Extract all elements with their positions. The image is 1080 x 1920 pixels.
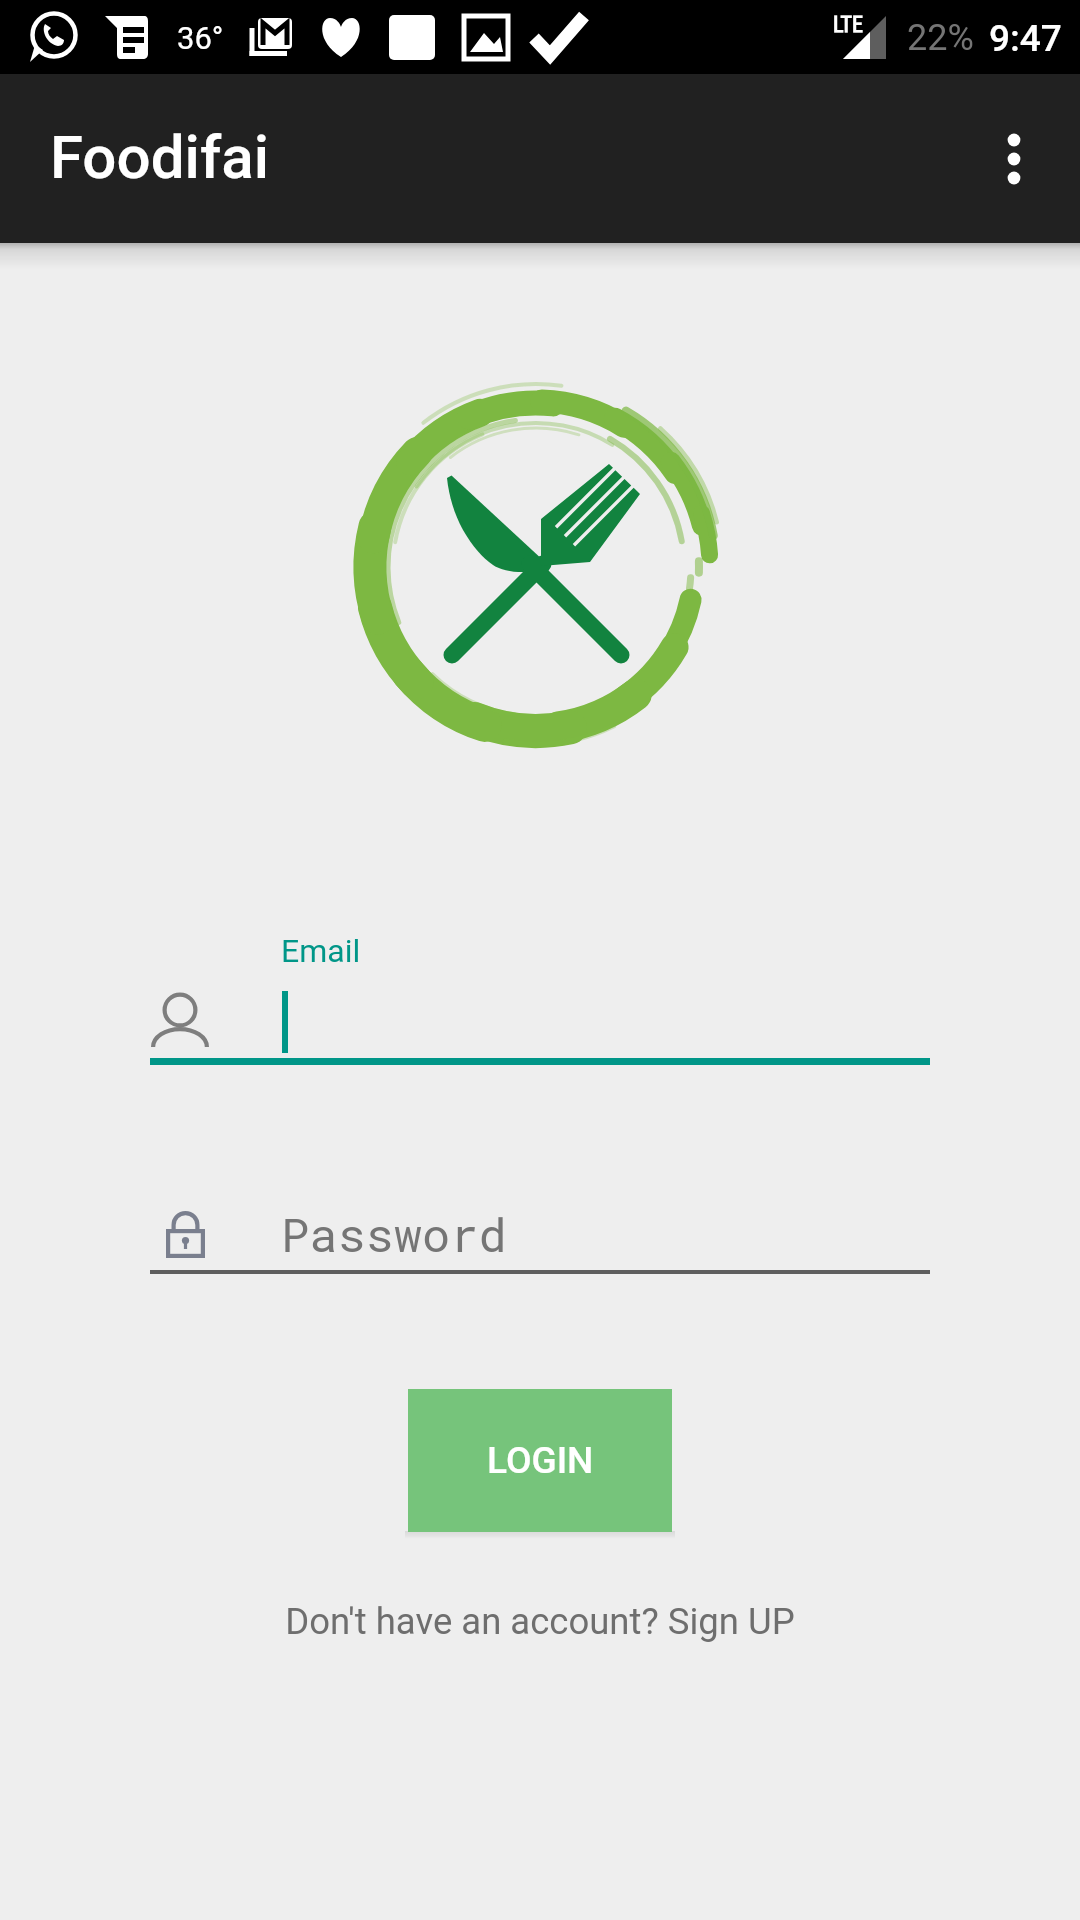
staticText: Don't have an account? Sign UP bbox=[285, 1600, 795, 1643]
button[interactable]: More options bbox=[959, 104, 1069, 214]
staticText: LOGIN bbox=[487, 1439, 594, 1482]
staticText: Password bbox=[281, 1203, 507, 1265]
staticText: 36° bbox=[177, 20, 224, 56]
staticText: Foodifai bbox=[50, 122, 270, 192]
staticText: Email bbox=[281, 932, 361, 970]
staticText: 22% bbox=[907, 17, 974, 59]
button[interactable]: LOGIN bbox=[408, 1389, 672, 1532]
staticText: 9:47 bbox=[989, 17, 1062, 60]
staticText: LTE bbox=[833, 12, 863, 38]
button[interactable]: Don't have an account? Sign UP bbox=[0, 1600, 1080, 1643]
